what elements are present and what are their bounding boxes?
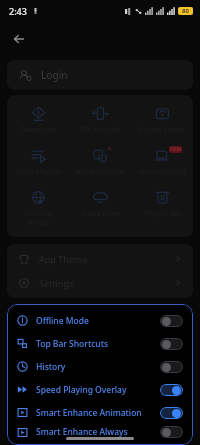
staticText: Settings [39,277,74,289]
staticText: Network Stream [24,209,53,227]
button[interactable]: Cloud Drive [69,186,131,222]
button[interactable]: App Theme [7,247,193,271]
button[interactable]: File Transfer [69,102,131,138]
staticText: Login [41,68,68,82]
staticText: Media Manager [74,167,126,177]
button[interactable]: History [7,355,193,378]
staticText: NEW [170,146,182,153]
button[interactable]: Private Folder [131,102,193,138]
button[interactable]: Network Stream [7,186,69,230]
staticText: Private Folder [139,125,185,135]
button[interactable]: Off [160,338,183,350]
button[interactable]: Back [6,26,32,52]
staticText: Cloud Drive [81,209,120,219]
staticText: History [36,361,66,373]
button[interactable]: NEW [131,144,193,180]
button[interactable]: On [160,407,183,419]
staticText: 80 [182,7,189,15]
button[interactable]: Video Playlists [7,144,69,180]
button[interactable]: Off [160,315,183,327]
staticText: Offline Mode [36,315,89,327]
staticText: File Transfer [80,125,121,135]
button[interactable]: Top Bar Shortcuts [7,332,193,355]
staticText: App Theme [39,253,88,265]
button[interactable]: Offline Mode [7,309,193,332]
button[interactable]: Smart Enhance Animation [7,401,193,424]
staticText: Smart Enhance Always [36,426,128,438]
staticText: Video Playlists [15,167,62,177]
staticText: 2:43 [9,5,27,17]
button[interactable]: Login [7,60,193,90]
button[interactable]: Off [160,361,183,373]
button[interactable]: On [160,384,183,396]
button[interactable]: Off [160,426,183,438]
button[interactable]: Smart Enhance Always [7,424,193,440]
button[interactable]: Media Manager [69,144,131,180]
staticText: Top Bar Shortcuts [36,338,109,350]
button[interactable]: Recycle Bin [131,186,193,222]
staticText: Recycle Bin [144,209,181,219]
staticText: Downloads [20,125,57,135]
button[interactable]: Downloads [7,102,69,138]
button[interactable]: Speed Playing Overlay [7,378,193,401]
staticText: Speed Playing Overlay [36,384,127,396]
staticText: Smart Enhance Animation [36,407,142,419]
